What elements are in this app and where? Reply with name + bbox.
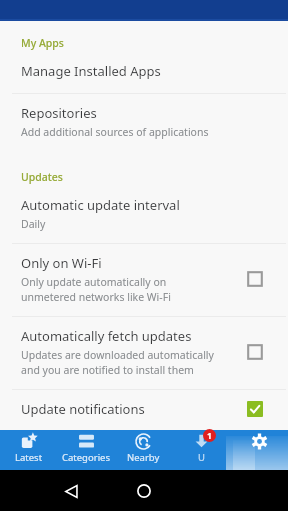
button[interactable]: Manage Installed Apps bbox=[0, 53, 288, 93]
staticText: Only on Wi-Fi bbox=[21, 254, 102, 272]
button[interactable] bbox=[230, 430, 288, 470]
staticText: Latest bbox=[15, 451, 43, 464]
staticText: Categories bbox=[62, 451, 110, 464]
staticText: Update notifications bbox=[21, 400, 145, 418]
button[interactable]: U bbox=[172, 430, 230, 470]
button[interactable]: Back bbox=[56, 476, 86, 506]
staticText: Updates are downloaded automatically bbox=[21, 348, 214, 362]
button[interactable]: Repositories bbox=[0, 94, 288, 151]
button[interactable]: Automatically fetch updates toggle bbox=[240, 337, 270, 367]
staticText: Only update automatically on bbox=[21, 275, 167, 289]
staticText: Nearby bbox=[127, 451, 160, 464]
button[interactable]: Automatic update interval bbox=[0, 187, 288, 243]
staticText: Automatically fetch updates bbox=[21, 327, 192, 345]
staticText: Repositories bbox=[21, 104, 97, 122]
button[interactable]: Only on Wi-Fi toggle bbox=[240, 264, 270, 294]
staticText: Automatic update interval bbox=[21, 196, 180, 214]
button[interactable]: Only on Wi-Fi bbox=[0, 244, 288, 316]
staticText: U bbox=[198, 451, 205, 464]
staticText: Manage Installed Apps bbox=[21, 62, 161, 80]
staticText: My Apps bbox=[21, 36, 64, 50]
button[interactable]: Update notifications toggle bbox=[240, 400, 270, 418]
staticText: Daily bbox=[21, 217, 46, 231]
staticText: Add additional sources of applications bbox=[21, 125, 209, 139]
staticText: 1 bbox=[207, 430, 212, 442]
button[interactable]: Latest bbox=[0, 430, 57, 470]
button[interactable]: Categories bbox=[57, 430, 114, 470]
button[interactable]: Automatically fetch updates bbox=[0, 317, 288, 389]
button[interactable]: Nearby bbox=[114, 430, 172, 470]
staticText: Updates bbox=[21, 170, 63, 184]
staticText: unmetered networks like Wi-Fi bbox=[21, 290, 171, 304]
button[interactable]: Home bbox=[129, 476, 159, 506]
button[interactable]: Update notifications bbox=[0, 390, 288, 430]
staticText: and you are notified to install them bbox=[21, 363, 194, 377]
